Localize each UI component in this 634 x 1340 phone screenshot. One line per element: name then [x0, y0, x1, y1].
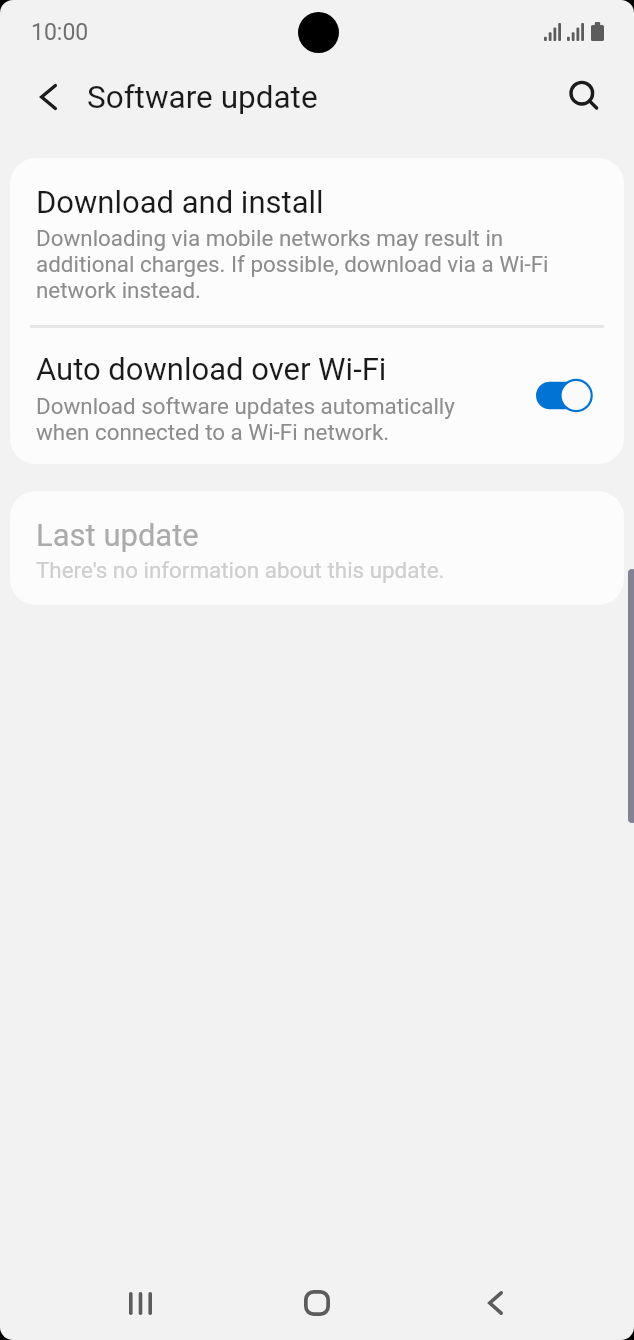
staticText: 10:00 [31, 19, 89, 46]
button[interactable]: Download and install [10, 158, 624, 324]
button[interactable]: Auto download over Wi-Fi [10, 324, 624, 464]
button[interactable]: Auto download over Wi-Fi [536, 378, 591, 413]
button[interactable]: Recent apps [90, 1258, 190, 1340]
staticText: Auto download over Wi-Fi [36, 351, 387, 387]
staticText: Download software updates automatically … [36, 394, 486, 446]
button[interactable]: Search [547, 59, 623, 135]
staticText: Downloading via mobile networks may resu… [36, 226, 576, 304]
staticText: Download and install [36, 184, 324, 220]
button[interactable]: Home [267, 1258, 367, 1340]
button[interactable]: Navigate up [10, 59, 86, 135]
staticText: Last update [36, 517, 199, 553]
button[interactable]: Last update [10, 491, 624, 605]
staticText: Software update [87, 79, 318, 116]
staticText: There's no information about this update… [36, 558, 445, 584]
button[interactable]: Back [445, 1258, 545, 1340]
